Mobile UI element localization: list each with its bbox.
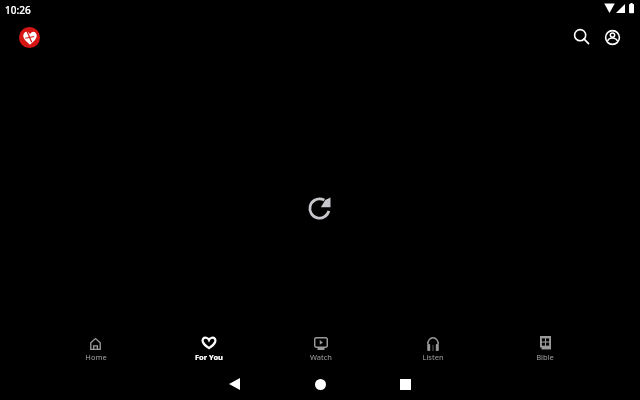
button[interactable]: Back: [222, 372, 246, 396]
button[interactable]: Home: [308, 372, 332, 396]
button[interactable]: YouVersion Bible: [14, 22, 44, 52]
button[interactable]: Watch: [265, 324, 377, 368]
button[interactable]: Retry: [295, 184, 344, 233]
staticText: Bible: [536, 352, 554, 362]
button[interactable]: For You: [152, 324, 265, 368]
button[interactable]: Recent apps: [393, 372, 417, 396]
button[interactable]: Account: [600, 25, 624, 49]
staticText: 10:26: [5, 3, 31, 17]
staticText: Home: [85, 352, 107, 362]
staticText: For You: [195, 352, 223, 362]
button[interactable]: Bible: [489, 324, 601, 368]
button[interactable]: Listen: [377, 324, 489, 368]
button[interactable]: Search: [569, 24, 594, 49]
staticText: Listen: [422, 352, 444, 362]
staticText: Watch: [310, 352, 332, 362]
button[interactable]: Home: [39, 324, 152, 368]
